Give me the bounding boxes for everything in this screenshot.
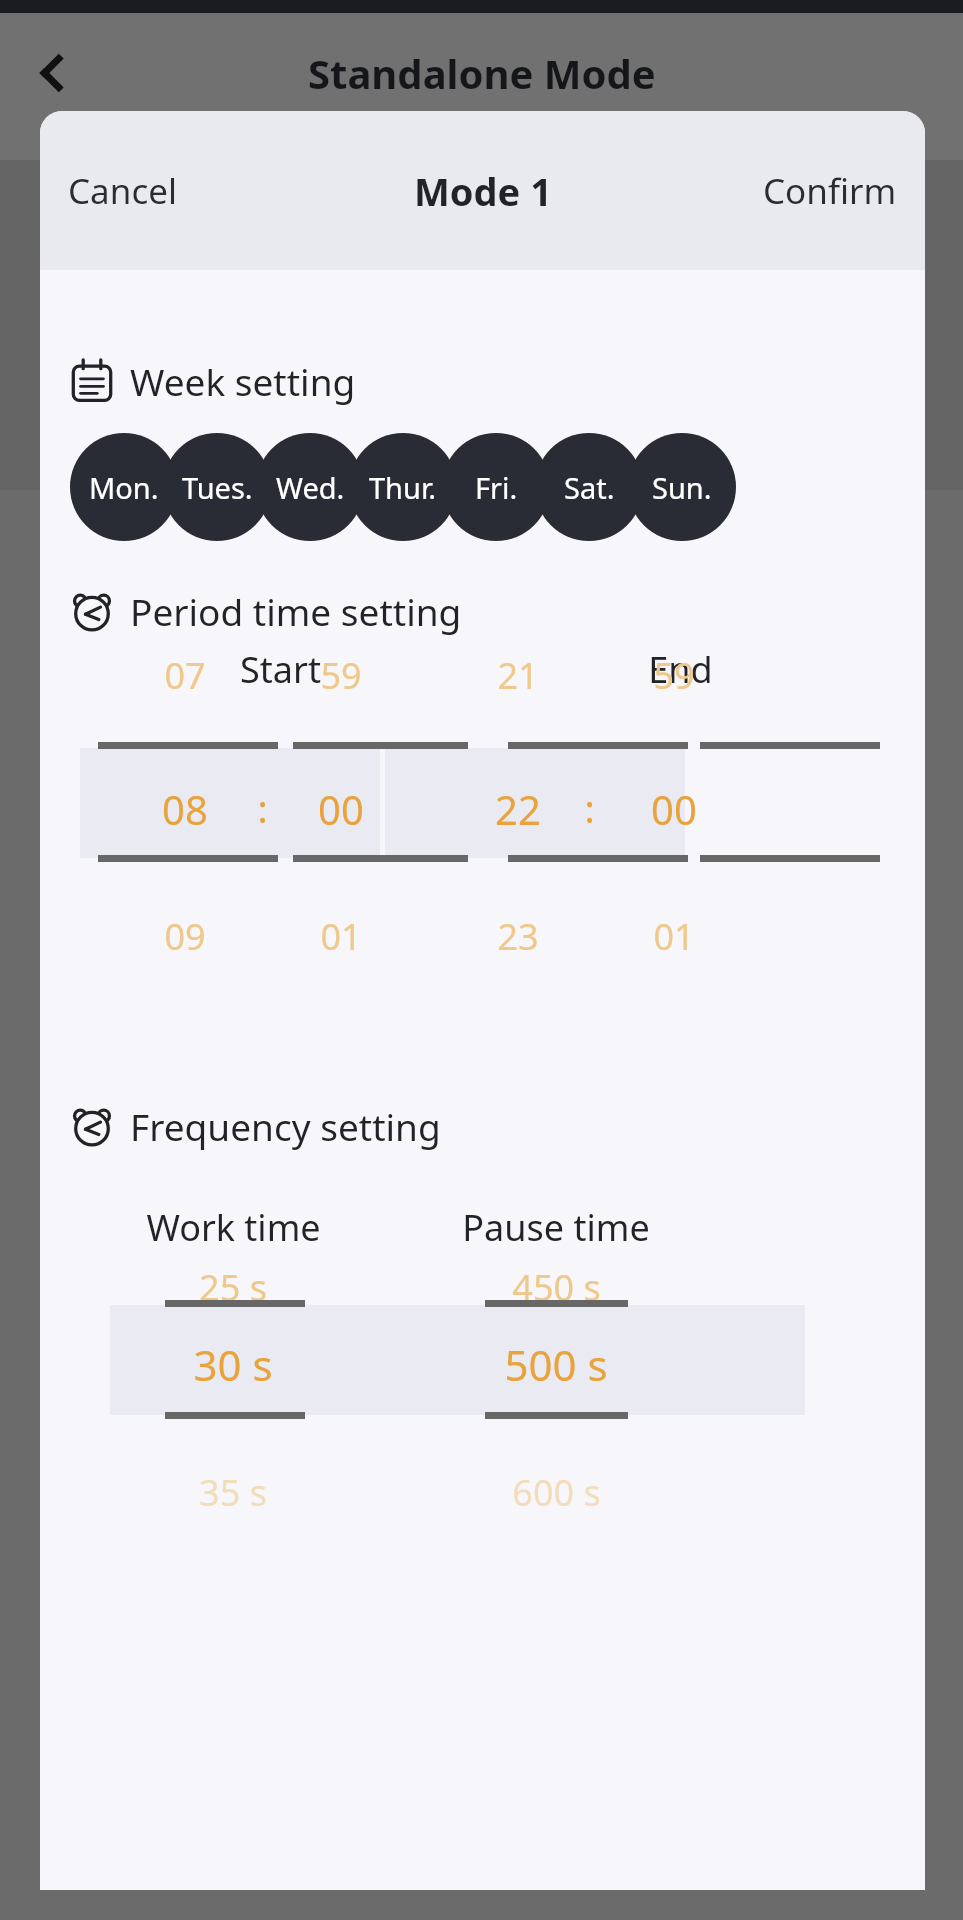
button[interactable]: Wed. [256, 433, 364, 541]
staticText: Work time [146, 1203, 321, 1252]
button[interactable]: Sat. [535, 433, 643, 541]
staticText: Week setting [130, 356, 356, 406]
button[interactable]: Fri. [442, 433, 550, 541]
staticText: 59 [653, 651, 695, 700]
staticText: 21 [497, 651, 539, 700]
staticText: Thur. [369, 468, 437, 507]
button[interactable]: Thur. [349, 433, 457, 541]
staticText: : [584, 782, 595, 834]
staticText: Period time setting [130, 586, 462, 636]
staticText: Confirm [763, 167, 897, 215]
staticText: 08 [162, 782, 208, 836]
button[interactable]: Cancel [50, 149, 195, 233]
button[interactable]: Tues. [163, 433, 271, 541]
staticText: 09 [164, 912, 206, 961]
staticText: Sat. [564, 468, 615, 507]
staticText: Tues. [182, 468, 253, 507]
staticText: 30 s [193, 1336, 273, 1393]
button[interactable]: Confirm [745, 149, 915, 233]
staticText: 00 [651, 782, 697, 836]
staticText: Mode 1 [414, 165, 552, 217]
staticText: 00 [318, 782, 364, 836]
staticText: 59 [320, 651, 362, 700]
button[interactable]: Back [18, 38, 88, 108]
staticText: Pause time [462, 1203, 650, 1252]
staticText: Start [240, 645, 321, 694]
staticText: Fri. [475, 468, 518, 507]
staticText: Cancel [68, 167, 177, 215]
staticText: 01 [320, 912, 362, 961]
staticText: Sun. [652, 468, 712, 507]
staticText: 22 [495, 782, 541, 836]
staticText: Frequency setting [130, 1101, 441, 1151]
button[interactable]: Mon. [70, 433, 178, 541]
staticText: : [257, 782, 268, 834]
staticText: 450 s [512, 1263, 601, 1312]
staticText: Mon. [89, 468, 159, 507]
staticText: Standalone Mode [308, 46, 656, 100]
staticText: 600 s [512, 1468, 601, 1517]
staticText: End [648, 645, 713, 694]
staticText: 23 [497, 912, 539, 961]
staticText: 01 [653, 912, 695, 961]
staticText: 35 s [199, 1468, 267, 1517]
staticText: 07 [164, 651, 206, 700]
staticText: Wed. [276, 468, 345, 507]
staticText: 25 s [199, 1263, 267, 1312]
staticText: 500 s [504, 1336, 608, 1393]
button[interactable]: Sun. [628, 433, 736, 541]
